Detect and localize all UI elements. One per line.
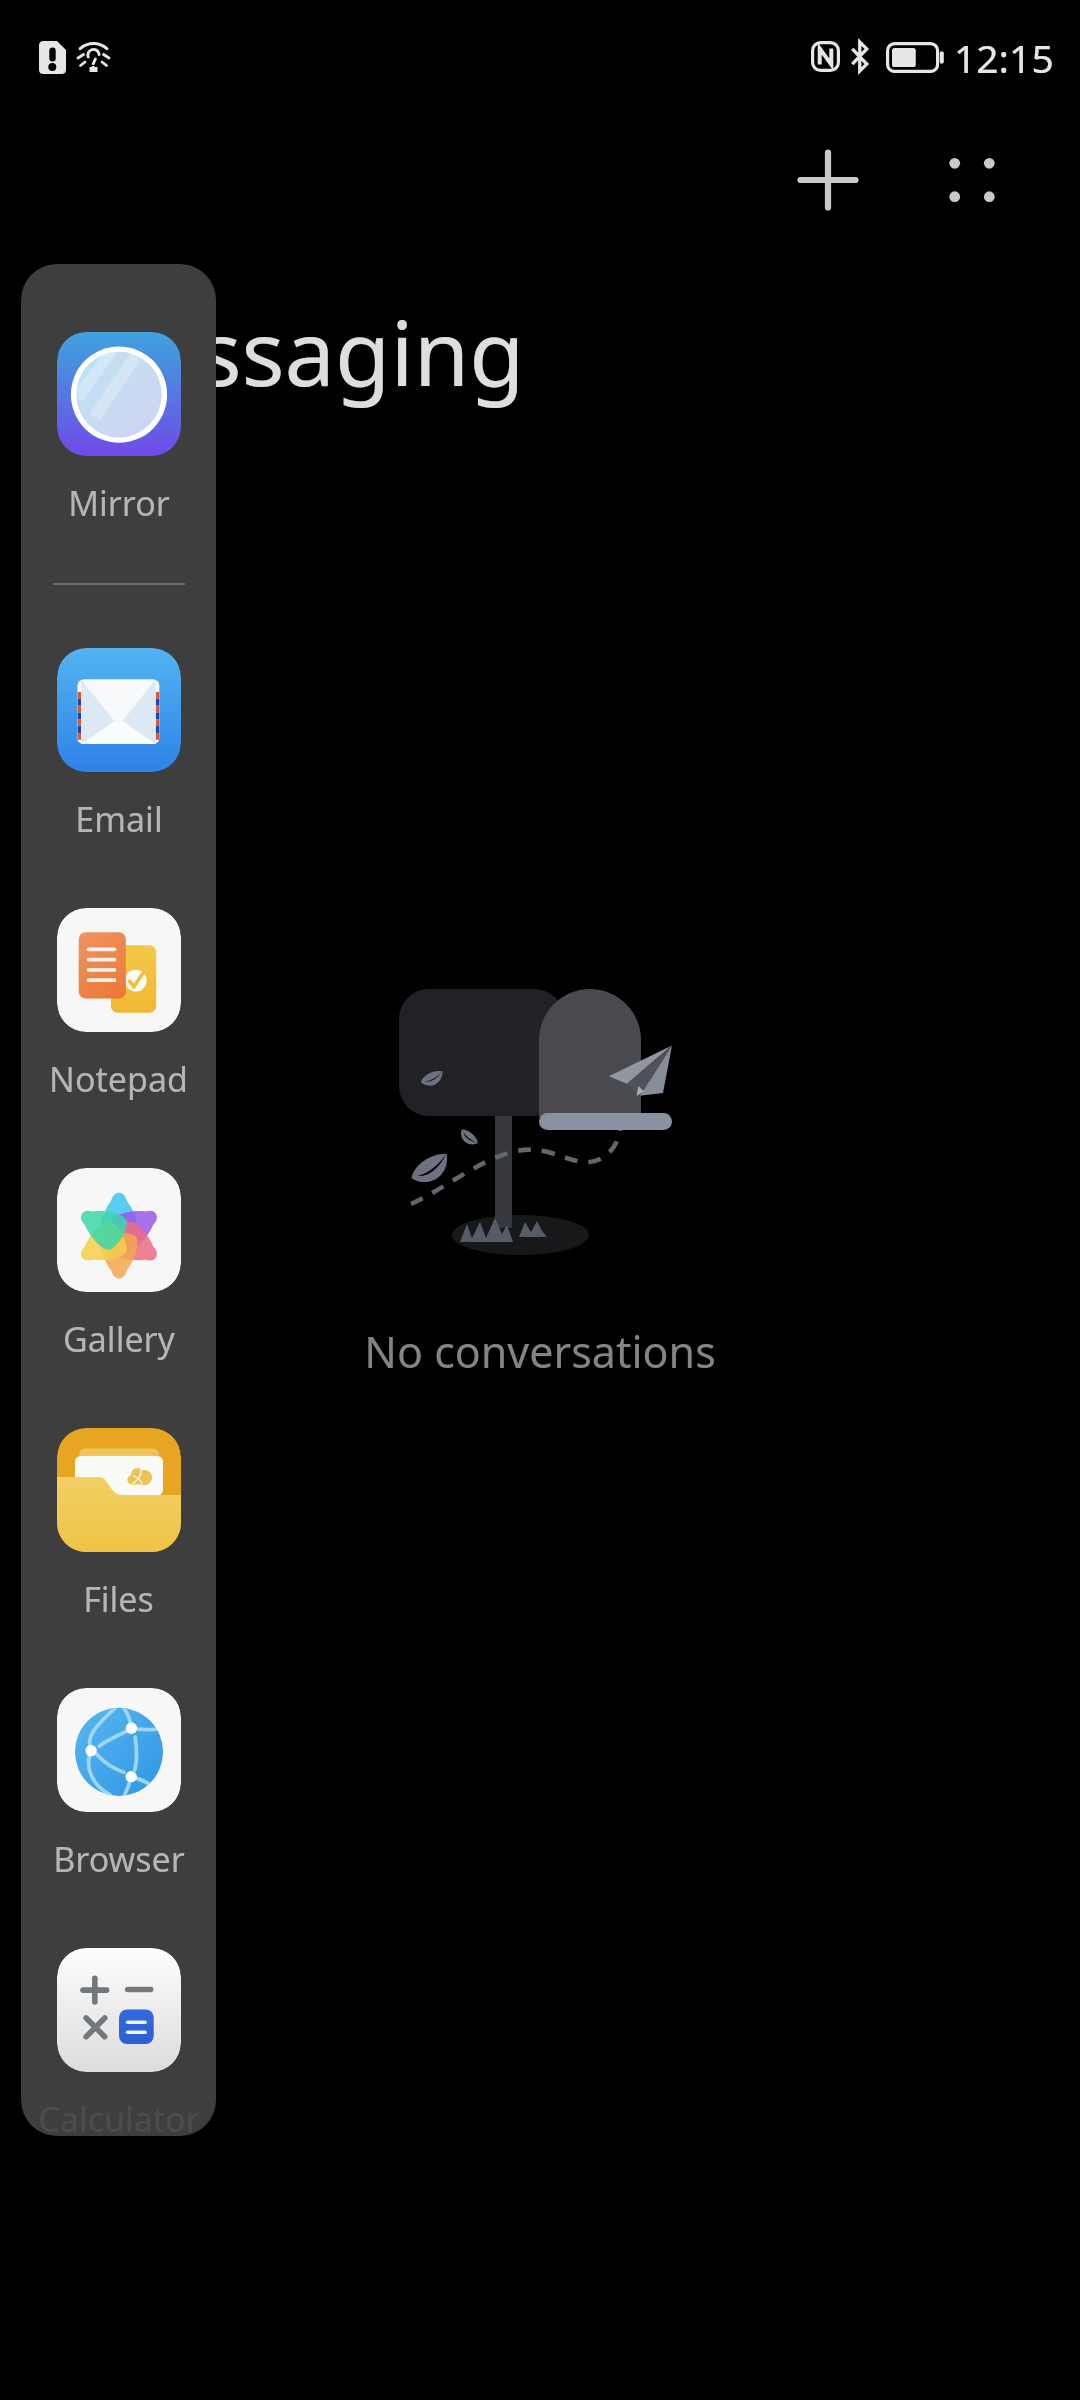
button[interactable]: Files [21,1428,216,1652]
staticText: Notepad [49,1056,188,1102]
staticText: Gallery [63,1316,175,1362]
staticText: Calculator [38,2096,200,2136]
staticText: Browser [53,1836,185,1882]
staticText: Mirror [68,480,170,526]
button[interactable]: Calculator [21,1948,216,2136]
button[interactable]: Browser [21,1688,216,1912]
button[interactable]: More options [912,120,1032,240]
staticText: Messaging [66,290,525,413]
staticText: No conversations [0,1322,1080,1381]
button[interactable]: Gallery [21,1168,216,1392]
staticText: Email [75,796,163,842]
button[interactable]: Notepad [21,908,216,1132]
button[interactable]: Mirror [21,332,216,556]
button[interactable]: Email [21,648,216,872]
staticText: Files [83,1576,154,1622]
staticText: 12:15 [954,31,1054,84]
button[interactable]: New conversation [768,120,888,240]
